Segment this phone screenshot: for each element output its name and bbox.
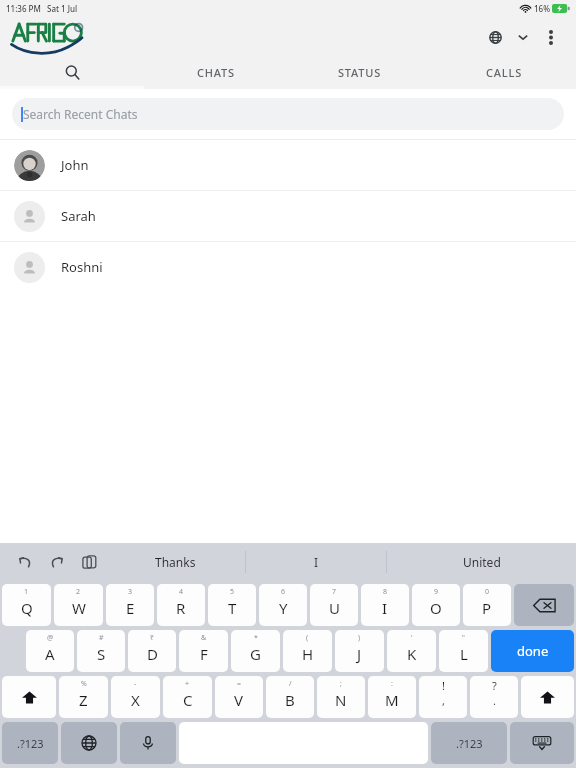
staticText: T — [228, 598, 237, 618]
staticText: W — [72, 598, 86, 618]
staticText: D — [147, 644, 158, 664]
button[interactable]: - — [111, 676, 160, 718]
staticText: 16% — [534, 3, 550, 14]
button[interactable]: ₹ — [128, 630, 176, 672]
button[interactable]: More options — [536, 22, 566, 52]
staticText: ₹ — [150, 633, 155, 643]
staticText: 9 — [434, 587, 439, 597]
staticText: : — [391, 679, 393, 689]
staticText: E — [126, 598, 135, 618]
button[interactable]: Search — [0, 58, 144, 86]
staticText: 11:36 PM — [6, 3, 41, 14]
button[interactable]: ' — [387, 630, 436, 672]
staticText: ' — [411, 633, 413, 643]
button[interactable]: .?123 — [2, 722, 58, 764]
button[interactable]: 3 — [106, 584, 154, 626]
staticText: I — [382, 598, 388, 618]
staticText: # — [99, 633, 104, 643]
button[interactable]: 5 — [208, 584, 256, 626]
button[interactable]: & — [179, 630, 228, 672]
staticText: * — [254, 633, 258, 643]
button[interactable]: CALLS — [432, 58, 576, 86]
button[interactable]: " — [439, 630, 488, 672]
button[interactable]: Expand — [510, 24, 536, 50]
staticText: 1 — [24, 587, 29, 597]
button[interactable]: / — [266, 676, 314, 718]
staticText: A — [45, 644, 55, 664]
button[interactable]: Shift — [2, 676, 56, 718]
staticText: CALLS — [486, 65, 522, 80]
staticText: F — [200, 644, 208, 664]
staticText: P — [482, 598, 492, 618]
button[interactable]: Thanks — [106, 543, 245, 581]
staticText: Z — [79, 690, 88, 710]
button[interactable]: I — [246, 543, 386, 581]
button[interactable]: 8 — [361, 584, 409, 626]
staticText: = — [237, 679, 242, 689]
button[interactable]: ( — [283, 630, 332, 672]
staticText: / — [289, 679, 292, 689]
staticText: 6 — [281, 587, 286, 597]
button[interactable]: @ — [26, 630, 74, 672]
staticText: ! — [442, 678, 445, 693]
button[interactable]: ) — [335, 630, 384, 672]
button[interactable]: 7 — [310, 584, 358, 626]
button[interactable]: Search Recent Chats — [12, 98, 564, 130]
button[interactable]: .?123 — [431, 722, 507, 764]
staticText: K — [407, 644, 417, 664]
staticText: O — [430, 598, 442, 618]
button[interactable]: Hide keyboard — [510, 722, 574, 764]
button[interactable]: = — [215, 676, 263, 718]
staticText: V — [234, 690, 244, 710]
button[interactable]: # — [77, 630, 125, 672]
button[interactable]: 2 — [54, 584, 103, 626]
button[interactable]: Voice input — [120, 722, 176, 764]
staticText: I — [314, 554, 319, 570]
button[interactable]: Redo — [44, 549, 70, 575]
staticText: J — [357, 644, 362, 664]
button[interactable]: John — [0, 140, 576, 190]
button[interactable]: ? — [470, 676, 518, 718]
staticText: 4 — [179, 587, 184, 597]
button[interactable]: STATUS — [288, 58, 432, 86]
button[interactable]: : — [368, 676, 416, 718]
staticText: ? — [492, 678, 497, 693]
staticText: Q — [21, 598, 33, 618]
button[interactable]: United — [387, 543, 576, 581]
button[interactable]: CHATS — [144, 58, 288, 86]
button[interactable]: % — [59, 676, 108, 718]
staticText: 5 — [230, 587, 235, 597]
staticText: S — [97, 644, 106, 664]
button[interactable]: 9 — [412, 584, 460, 626]
button[interactable]: Undo — [12, 549, 38, 575]
button[interactable]: 4 — [157, 584, 205, 626]
button[interactable]: Sarah — [0, 191, 576, 241]
staticText: Thanks — [155, 554, 196, 570]
staticText: CHATS — [197, 65, 235, 80]
button[interactable]: Clipboard — [76, 549, 102, 575]
button[interactable]: Language — [480, 22, 510, 52]
staticText: X — [131, 690, 140, 710]
button[interactable]: 0 — [463, 584, 511, 626]
button[interactable]: * — [231, 630, 280, 672]
staticText: N — [335, 690, 347, 710]
staticText: John — [61, 156, 89, 174]
button[interactable]: 6 — [259, 584, 307, 626]
staticText: Sarah — [61, 207, 96, 225]
staticText: @ — [47, 633, 54, 643]
button[interactable]: ! — [419, 676, 467, 718]
button[interactable]: Shift — [521, 676, 574, 718]
button[interactable]: Backspace — [514, 584, 574, 626]
button[interactable]: ; — [317, 676, 365, 718]
staticText: 0 — [485, 587, 490, 597]
staticText: Search Recent Chats — [23, 106, 138, 122]
button[interactable]: 1 — [2, 584, 51, 626]
staticText: 3 — [128, 587, 133, 597]
button[interactable]: + — [163, 676, 212, 718]
button[interactable]: Change language — [61, 722, 117, 764]
button[interactable]: done — [491, 630, 574, 672]
staticText: " — [462, 633, 465, 643]
button[interactable]: Roshni — [0, 242, 576, 292]
staticText: 8 — [383, 587, 388, 597]
